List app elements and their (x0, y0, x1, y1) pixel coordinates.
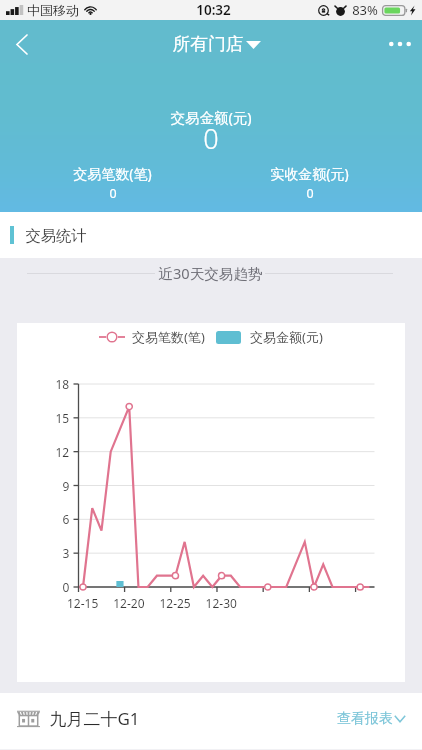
staticText: 中国移动 (27, 2, 79, 18)
staticText: 交易统计 (25, 226, 87, 245)
staticText: 近30天交易趋势 (158, 263, 263, 283)
button[interactable]: Back (0, 22, 44, 66)
staticText: 10:32 (196, 1, 231, 19)
button[interactable]: 所有门店 (160, 29, 261, 59)
staticText: 83% (352, 1, 378, 19)
staticText: 交易笔数(笔) (132, 328, 205, 346)
staticText: 0 (306, 185, 314, 202)
button[interactable]: 查看报表 (335, 702, 408, 736)
staticText: 查看报表 (337, 710, 393, 728)
button[interactable]: More options (378, 22, 422, 66)
staticText: 交易金额(元) (250, 328, 323, 346)
staticText: 0 (109, 185, 117, 202)
staticText: 0 (203, 120, 219, 157)
staticText: 交易金额(元) (170, 107, 252, 127)
staticText: 九月二十G1 (49, 707, 140, 730)
staticText: 交易笔数(笔) (73, 164, 152, 183)
staticText: 实收金额(元) (270, 164, 349, 183)
staticText: 所有门店 (172, 33, 244, 55)
